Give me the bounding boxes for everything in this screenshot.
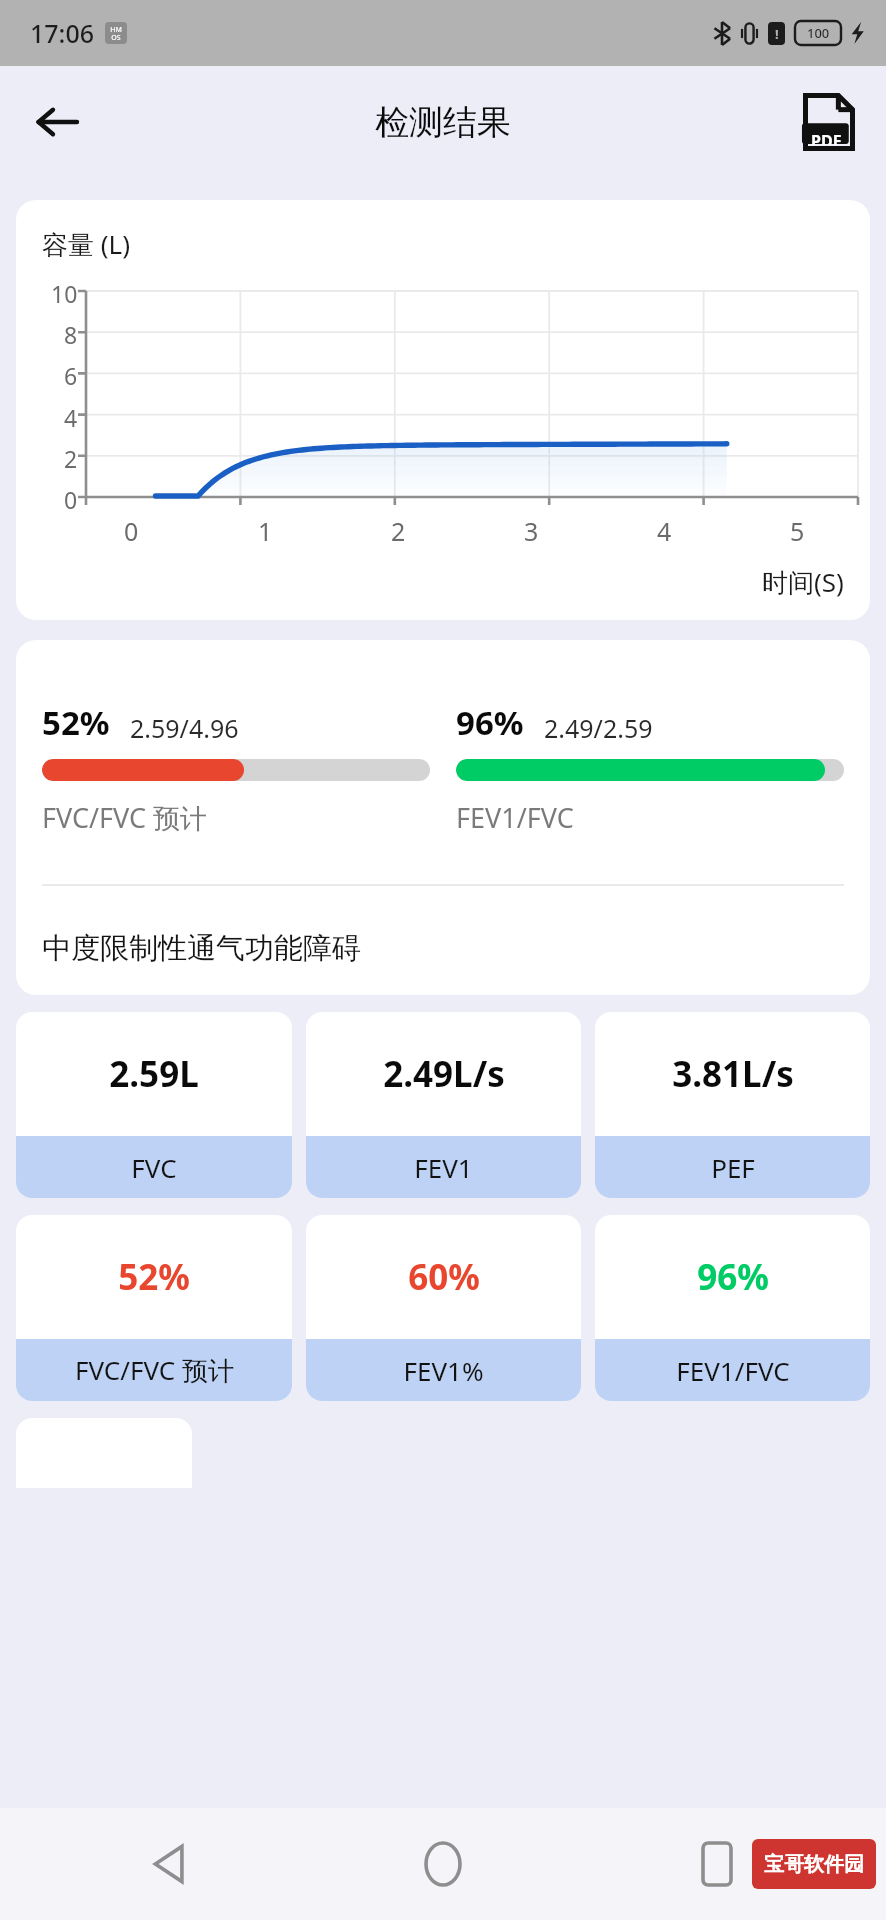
staticText: 6 <box>64 360 78 386</box>
button[interactable]: Back <box>130 1825 208 1903</box>
staticText: 2.49/2.59 <box>544 711 653 745</box>
staticText: 2.59/4.96 <box>130 711 239 745</box>
staticText: 2 <box>64 443 78 469</box>
staticText: 60% <box>408 1253 480 1301</box>
staticText: PDF <box>811 130 842 145</box>
button[interactable]: 2.49L/s <box>306 1012 581 1198</box>
button[interactable]: 2.59L <box>16 1012 292 1198</box>
staticText: 4 <box>657 514 672 548</box>
staticText: FEV1% <box>403 1353 484 1388</box>
staticText: FEV1 <box>414 1150 473 1185</box>
staticText: 3.81L/s <box>672 1050 794 1098</box>
staticText: 3 <box>524 514 539 548</box>
staticText: HM OS <box>110 25 122 42</box>
staticText: 96% <box>456 700 524 745</box>
button[interactable]: 3.81L/s <box>595 1012 870 1198</box>
staticText: ! <box>775 25 779 43</box>
button[interactable]: Export PDF <box>796 89 862 155</box>
button[interactable]: Back <box>26 91 88 153</box>
staticText: 检测结果 <box>375 101 511 144</box>
staticText: 10 <box>51 278 78 304</box>
staticText: 2.59L <box>109 1050 199 1098</box>
staticText: 宝哥软件园 <box>764 1852 864 1877</box>
button[interactable]: Home <box>404 1825 482 1903</box>
staticText: 容量 (L) <box>42 226 130 262</box>
button[interactable]: Recents <box>678 1825 756 1903</box>
staticText: 0 <box>124 514 139 548</box>
staticText: 17:06 <box>30 16 95 50</box>
staticText: 时间(S) <box>762 564 844 600</box>
button[interactable]: 52% <box>16 1215 292 1401</box>
staticText: 52% <box>42 700 110 745</box>
staticText: PEF <box>711 1150 755 1185</box>
button[interactable]: 96% <box>595 1215 870 1401</box>
staticText: 52% <box>118 1253 190 1301</box>
staticText: 0 <box>64 484 78 510</box>
staticText: 100 <box>807 24 830 42</box>
staticText: 中度限制性通气功能障碍 <box>42 930 361 967</box>
staticText: 2 <box>391 514 406 548</box>
staticText: FVC <box>131 1150 177 1185</box>
staticText: FVC/FVC 预计 <box>75 1352 234 1388</box>
staticText: FEV1/FVC <box>456 799 574 836</box>
staticText: 2.49L/s <box>383 1050 505 1098</box>
button[interactable]: 60% <box>306 1215 581 1401</box>
staticText: 4 <box>64 402 78 428</box>
staticText: 5 <box>790 514 805 548</box>
staticText: FVC/FVC 预计 <box>42 799 208 836</box>
staticText: FEV1/FVC <box>676 1353 790 1388</box>
staticText: 1 <box>258 514 273 548</box>
staticText: 8 <box>64 319 78 345</box>
staticText: 96% <box>697 1253 769 1301</box>
